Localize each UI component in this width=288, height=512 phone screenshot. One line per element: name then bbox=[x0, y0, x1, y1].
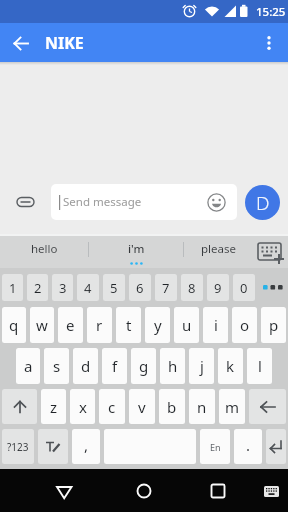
button[interactable] bbox=[257, 274, 288, 301]
button[interactable]: . bbox=[234, 429, 262, 464]
button[interactable]: t bbox=[116, 307, 141, 343]
button[interactable]: i'm bbox=[89, 236, 183, 268]
button[interactable]: r bbox=[87, 307, 112, 343]
button[interactable]: ?123 bbox=[2, 429, 34, 464]
button[interactable]: f bbox=[102, 348, 127, 384]
staticText: . bbox=[246, 435, 251, 455]
button[interactable]: 7 bbox=[155, 274, 177, 301]
button[interactable] bbox=[256, 30, 282, 56]
staticText: c bbox=[108, 397, 116, 417]
button[interactable]: p bbox=[261, 307, 286, 343]
staticText: 5 bbox=[110, 279, 118, 297]
button[interactable]: x bbox=[70, 389, 95, 424]
staticText: e bbox=[66, 315, 75, 335]
button[interactable]: En bbox=[200, 429, 230, 464]
staticText: z bbox=[50, 397, 58, 417]
staticText: 1 bbox=[9, 279, 17, 297]
button[interactable]: h bbox=[160, 348, 185, 384]
staticText: f bbox=[112, 356, 118, 376]
button[interactable] bbox=[12, 34, 30, 52]
staticText: 0 bbox=[240, 279, 248, 297]
button[interactable] bbox=[2, 389, 37, 424]
staticText: 4 bbox=[84, 279, 92, 297]
staticText: 15:25 bbox=[256, 4, 286, 20]
button[interactable]: k bbox=[218, 348, 243, 384]
button[interactable]: 2 bbox=[27, 274, 48, 301]
staticText: 9 bbox=[214, 279, 222, 297]
button[interactable]: 9 bbox=[207, 274, 229, 301]
button[interactable]: y bbox=[145, 307, 170, 343]
button[interactable]: 8 bbox=[181, 274, 203, 301]
button[interactable] bbox=[264, 486, 279, 497]
staticText: i bbox=[214, 315, 218, 335]
button[interactable] bbox=[211, 484, 225, 498]
staticText: v bbox=[138, 397, 146, 417]
staticText: please bbox=[201, 241, 236, 257]
staticText: r bbox=[96, 315, 103, 335]
staticText: , bbox=[84, 435, 89, 455]
button[interactable]: 3 bbox=[52, 274, 73, 301]
button[interactable]: g bbox=[131, 348, 156, 384]
staticText: k bbox=[226, 356, 235, 376]
button[interactable]: m bbox=[219, 389, 245, 424]
button[interactable] bbox=[207, 193, 226, 212]
button[interactable]: 0 bbox=[233, 274, 255, 301]
staticText: a bbox=[24, 356, 33, 376]
button[interactable]: j bbox=[189, 348, 214, 384]
staticText: Send message bbox=[63, 194, 142, 210]
staticText: l bbox=[258, 356, 262, 376]
staticText: b bbox=[167, 397, 177, 417]
button[interactable]: q bbox=[2, 307, 26, 343]
button[interactable]: s bbox=[44, 348, 69, 384]
button[interactable]: 4 bbox=[77, 274, 99, 301]
button[interactable]: l bbox=[247, 348, 272, 384]
button[interactable]: , bbox=[72, 429, 100, 464]
staticText: m bbox=[225, 397, 240, 417]
button[interactable]: o bbox=[232, 307, 257, 343]
button[interactable]: D bbox=[245, 185, 280, 220]
staticText: t bbox=[126, 315, 132, 335]
staticText: D bbox=[256, 190, 270, 216]
button[interactable]: 5 bbox=[103, 274, 125, 301]
button[interactable] bbox=[0, 184, 51, 220]
button[interactable]: Send message bbox=[51, 184, 237, 220]
staticText: x bbox=[79, 397, 87, 417]
button[interactable]: hello bbox=[0, 236, 88, 268]
button[interactable]: a bbox=[16, 348, 40, 384]
staticText: n bbox=[197, 397, 207, 417]
staticText: En bbox=[210, 441, 221, 453]
staticText: d bbox=[81, 356, 91, 376]
staticText: i'm bbox=[128, 241, 145, 257]
staticText: o bbox=[240, 315, 250, 335]
button[interactable]: e bbox=[58, 307, 83, 343]
staticText: hello bbox=[31, 241, 58, 257]
button[interactable] bbox=[266, 429, 286, 464]
staticText: w bbox=[36, 315, 48, 335]
staticText: 6 bbox=[136, 279, 144, 297]
button[interactable] bbox=[249, 389, 286, 424]
button[interactable]: u bbox=[174, 307, 199, 343]
button[interactable]: d bbox=[73, 348, 98, 384]
staticText: 7 bbox=[162, 279, 170, 297]
button[interactable]: i bbox=[203, 307, 228, 343]
staticText: y bbox=[154, 315, 162, 335]
button[interactable]: b bbox=[159, 389, 185, 424]
staticText: p bbox=[269, 315, 279, 335]
button[interactable]: n bbox=[189, 389, 215, 424]
button[interactable]: 6 bbox=[129, 274, 151, 301]
staticText: u bbox=[182, 315, 192, 335]
staticText: 8 bbox=[188, 279, 196, 297]
button[interactable] bbox=[38, 429, 68, 464]
button[interactable] bbox=[253, 236, 288, 268]
button[interactable]: 1 bbox=[2, 274, 23, 301]
button[interactable] bbox=[56, 486, 72, 499]
button[interactable] bbox=[137, 484, 151, 498]
button[interactable]: c bbox=[99, 389, 125, 424]
button[interactable]: w bbox=[30, 307, 54, 343]
button[interactable]: please bbox=[184, 236, 253, 268]
staticText: ?123 bbox=[7, 440, 29, 454]
button[interactable]: v bbox=[129, 389, 155, 424]
button[interactable]: z bbox=[41, 389, 66, 424]
staticText: g bbox=[139, 356, 149, 376]
